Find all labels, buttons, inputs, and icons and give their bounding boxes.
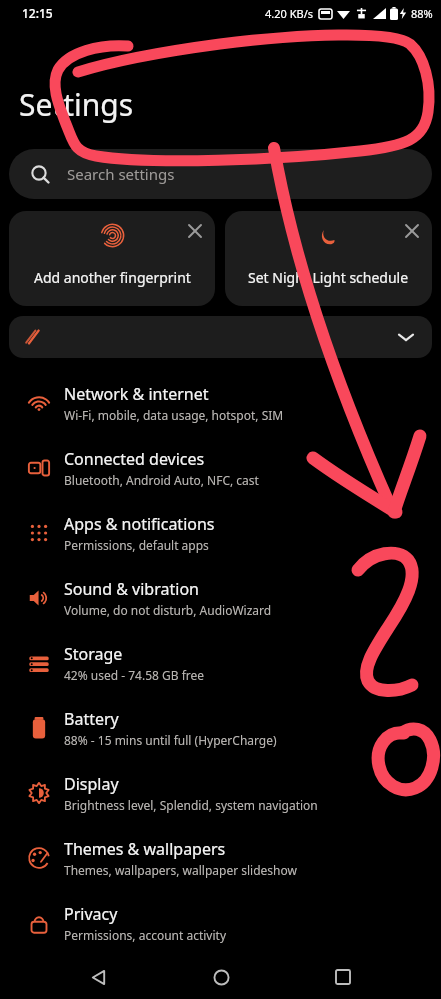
- staticText: Bluetooth, Android Auto, NFC, cast: [64, 472, 259, 488]
- button[interactable]: Apps & notifications: [0, 500, 441, 565]
- staticText: 88% - 15 mins until full (HyperCharge): [64, 732, 277, 748]
- button[interactable]: Recent apps: [319, 955, 367, 999]
- button[interactable]: Network & internet: [0, 370, 441, 435]
- staticText: Themes & wallpapers: [64, 838, 226, 860]
- staticText: Add another fingerprint: [34, 268, 191, 287]
- staticText: Display: [64, 773, 119, 795]
- button[interactable]: Battery: [0, 695, 441, 760]
- staticText: Themes, wallpapers, wallpaper slideshow: [64, 862, 297, 878]
- button[interactable]: Dismiss: [399, 218, 425, 244]
- button[interactable]: Connected devices: [0, 435, 441, 500]
- staticText: Connected devices: [64, 448, 205, 470]
- staticText: Privacy: [64, 903, 118, 925]
- staticText: Storage: [64, 643, 123, 665]
- staticText: Volume, do not disturb, AudioWizard: [64, 602, 272, 618]
- button[interactable]: Dismiss: [182, 218, 208, 244]
- staticText: Sound & vibration: [64, 578, 199, 600]
- staticText: Permissions, default apps: [64, 537, 209, 553]
- staticText: Search settings: [67, 164, 175, 184]
- staticText: Battery: [64, 708, 119, 730]
- button[interactable]: Themes & wallpapers: [0, 825, 441, 890]
- staticText: 88%: [411, 6, 433, 21]
- staticText: Brightness level, Splendid, system navig…: [64, 797, 318, 813]
- button[interactable]: Dismiss: [9, 211, 215, 306]
- staticText: 42% used - 74.58 GB free: [64, 667, 205, 683]
- staticText: 12:15: [22, 5, 53, 21]
- staticText: Permissions, account activity: [64, 927, 227, 943]
- button[interactable]: Storage: [0, 630, 441, 695]
- button[interactable]: Dismiss: [225, 211, 432, 306]
- button[interactable]: Back: [74, 955, 122, 999]
- staticText: Wi-Fi, mobile, data usage, hotspot, SIM: [64, 407, 284, 423]
- staticText: Network & internet: [64, 383, 209, 405]
- button[interactable]: Sound & vibration: [0, 565, 441, 630]
- staticText: Set Night Light schedule: [248, 268, 409, 287]
- button[interactable]: Home: [197, 955, 245, 999]
- staticText: 4.20 KB/s: [265, 6, 314, 21]
- button[interactable]: Search settings: [9, 149, 432, 199]
- button[interactable]: Privacy: [0, 890, 441, 955]
- staticText: Apps & notifications: [64, 513, 215, 535]
- button[interactable]: Expand: [9, 316, 432, 358]
- staticText: Settings: [19, 84, 134, 125]
- button[interactable]: Expand: [394, 325, 418, 349]
- button[interactable]: Display: [0, 760, 441, 825]
